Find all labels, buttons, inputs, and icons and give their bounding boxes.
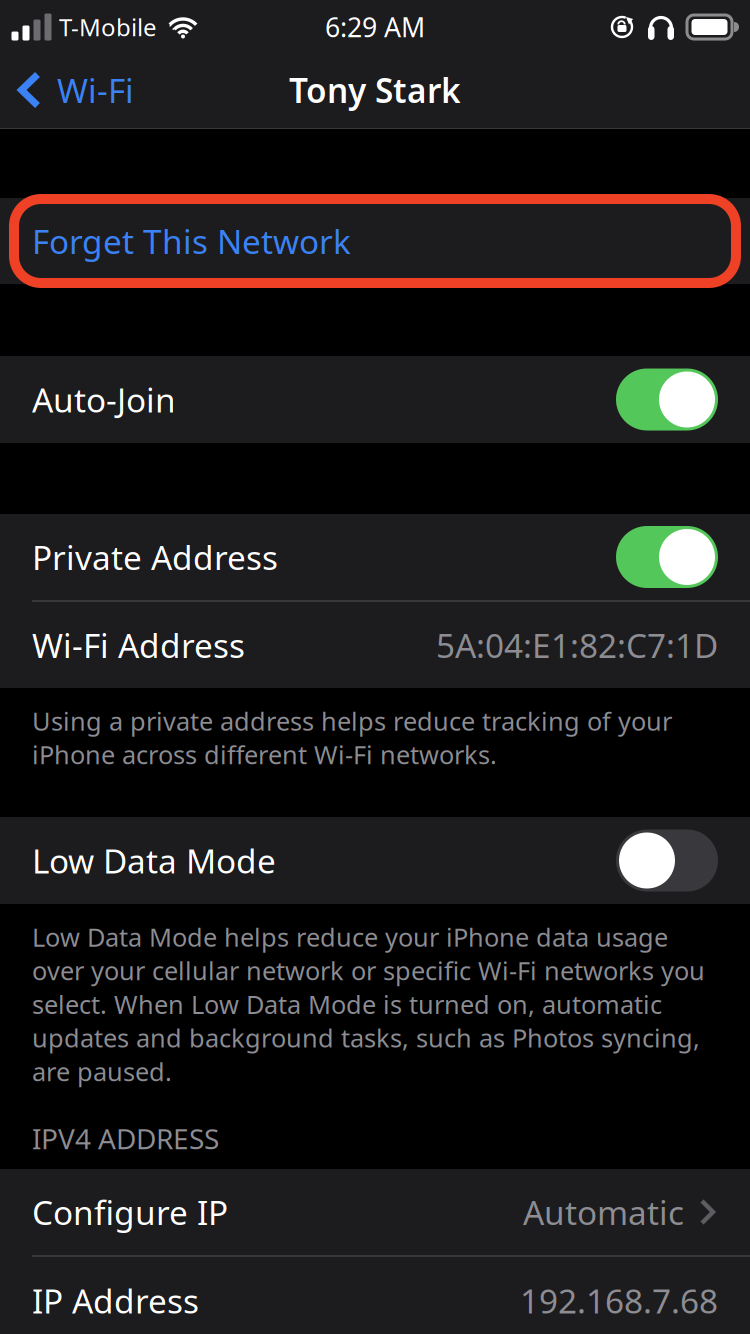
button[interactable]: Auto-Join — [0, 356, 750, 443]
button[interactable]: Private Address — [0, 514, 750, 600]
staticText: IP Address — [32, 1278, 199, 1323]
button[interactable]: Wi-Fi — [0, 53, 150, 127]
staticText: 6:29 AM — [325, 9, 425, 45]
staticText: Tony Stark — [289, 68, 461, 112]
staticText: T-Mobile — [59, 11, 157, 43]
staticText: IPV4 ADDRESS — [32, 1120, 219, 1157]
button[interactable]: Low Data Mode — [0, 817, 750, 904]
staticText: Low Data Mode — [32, 838, 276, 883]
staticText: Low Data Mode helps reduce your iPhone d… — [32, 920, 705, 1088]
staticText: Using a private address helps reduce tra… — [32, 704, 672, 771]
staticText: Wi-Fi Address — [32, 623, 245, 667]
staticText: Wi-Fi — [57, 68, 134, 112]
staticText: 5A:04:E1:82:C7:1D — [436, 623, 718, 667]
staticText: 192.168.7.68 — [520, 1278, 718, 1323]
staticText: Forget This Network — [32, 219, 351, 263]
staticText: Private Address — [32, 535, 278, 579]
staticText: Auto-Join — [32, 377, 176, 422]
button[interactable]: Forget This Network — [0, 198, 750, 284]
staticText: Automatic — [523, 1190, 684, 1234]
button[interactable]: Configure IP — [0, 1169, 750, 1255]
staticText: Configure IP — [32, 1190, 228, 1234]
